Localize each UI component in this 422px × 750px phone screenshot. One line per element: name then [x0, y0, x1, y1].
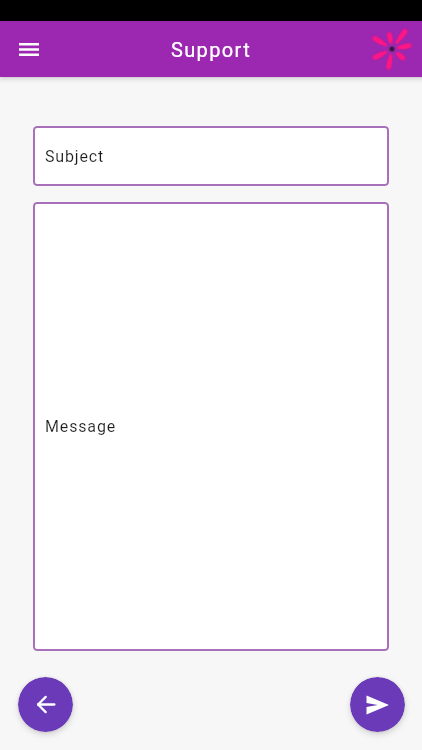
staticText: Message [45, 417, 117, 436]
button[interactable]: Notifications [369, 26, 415, 72]
button[interactable]: Subject [33, 126, 389, 186]
button[interactable]: Back [18, 677, 73, 732]
button[interactable]: Open navigation menu [8, 28, 50, 70]
button[interactable]: Message [33, 202, 389, 651]
staticText: Subject [45, 147, 105, 166]
button[interactable]: Send message [350, 677, 405, 732]
staticText: Support [171, 38, 252, 61]
